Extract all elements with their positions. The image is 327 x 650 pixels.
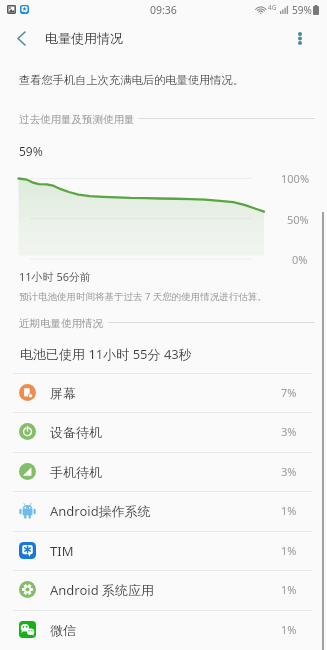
staticText: 100% (281, 171, 310, 186)
button[interactable]: Back (8, 25, 34, 51)
staticText: 59% (19, 143, 43, 159)
staticText: 09:36 (150, 3, 177, 17)
button[interactable]: 手机待机 (0, 452, 327, 491)
staticText: Android操作系统 (50, 502, 151, 520)
button[interactable]: Android操作系统 (0, 491, 327, 530)
staticText: 0% (292, 252, 308, 267)
button[interactable]: Android 系统应用 (0, 570, 327, 609)
staticText: 电量使用情况 (45, 30, 123, 46)
button[interactable]: 设备待机 (0, 412, 327, 451)
staticText: 手机待机 (50, 464, 102, 480)
button[interactable]: TIM (0, 531, 327, 570)
staticText: 过去使用量及预测使用量 (19, 113, 135, 126)
button[interactable]: More options (287, 25, 313, 51)
staticText: 近期电量使用情况 (19, 317, 103, 330)
staticText: Android 系统应用 (50, 581, 155, 599)
staticText: 7% (281, 385, 297, 400)
staticText: 查看您手机自上次充满电后的电量使用情况。 (19, 73, 244, 87)
staticText: 预计电池使用时间将基于过去 7 天您的使用情况进行估算。 (19, 290, 267, 303)
staticText: 1% (281, 582, 297, 597)
button[interactable]: 屏幕 (0, 373, 327, 412)
staticText: 1% (281, 503, 297, 518)
staticText: 11小时 56分前 (19, 269, 92, 284)
staticText: 1% (281, 622, 297, 637)
staticText: 1% (281, 543, 297, 558)
staticText: 4G (268, 3, 277, 12)
staticText: 屏幕 (50, 385, 76, 401)
staticText: 59% (292, 3, 312, 17)
button[interactable]: 微信 (0, 610, 327, 649)
staticText: 电池已使用 11小时 55分 43秒 (20, 345, 192, 363)
staticText: 3% (281, 464, 297, 479)
staticText: 微信 (50, 622, 76, 638)
staticText: 设备待机 (50, 424, 102, 440)
staticText: 50% (287, 212, 309, 227)
staticText: TIM (50, 542, 74, 560)
staticText: 3% (281, 424, 297, 439)
